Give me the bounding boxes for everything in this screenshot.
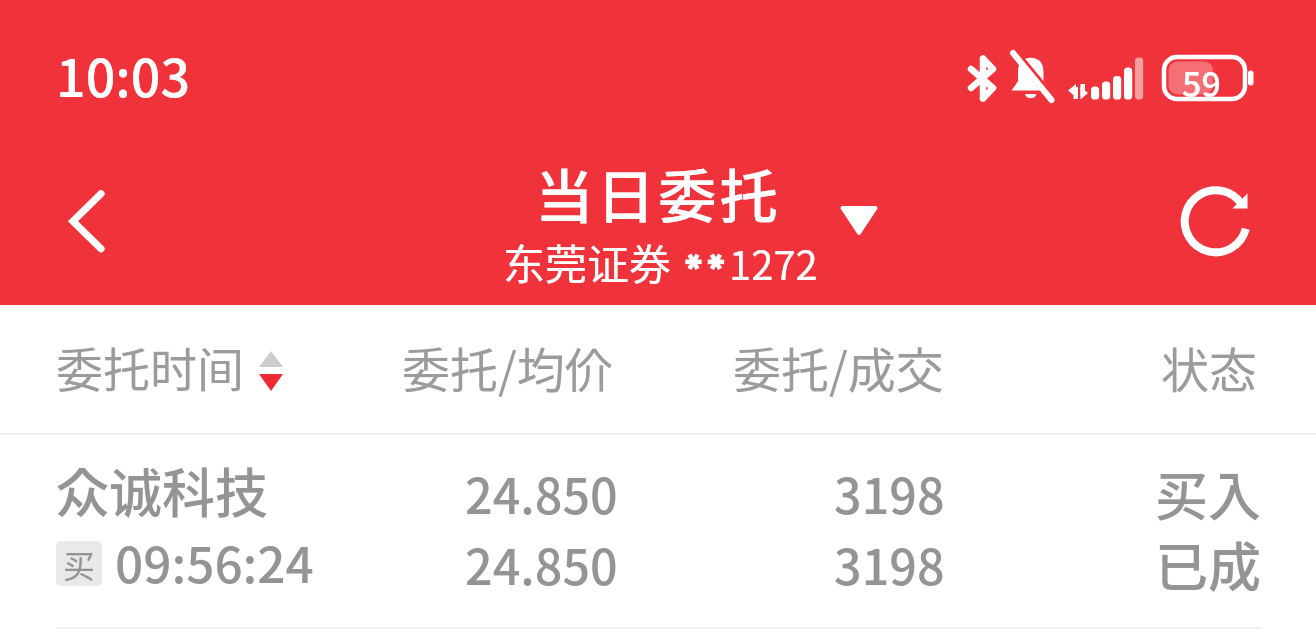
staticText: 东莞证券 xyxy=(503,231,672,292)
staticText: 买 xyxy=(63,541,96,586)
staticText: 59 xyxy=(1182,58,1221,107)
staticText: 买入 xyxy=(1155,455,1261,532)
button[interactable]: Refresh xyxy=(1167,172,1263,268)
staticText: 状态 xyxy=(1161,332,1258,402)
staticText: 24.850 xyxy=(465,458,618,528)
staticText: 委托/均价 xyxy=(402,332,613,402)
staticText: 委托时间 xyxy=(56,332,244,400)
staticText: 24.850 xyxy=(465,529,618,599)
staticText: 众诚科技 xyxy=(56,452,268,529)
staticText: 1272 xyxy=(729,234,818,292)
staticText: 3198 xyxy=(834,529,945,599)
staticText: 3198 xyxy=(834,458,945,528)
staticText: 委托/成交 xyxy=(733,332,944,402)
staticText: 09:56:24 xyxy=(115,526,314,598)
button[interactable]: 众诚科技 xyxy=(0,434,1316,626)
staticText: 当日委托 xyxy=(535,150,782,235)
button[interactable]: Back xyxy=(37,166,137,276)
staticText: 10:03 xyxy=(56,37,191,112)
staticText: 已成 xyxy=(1155,526,1261,603)
button[interactable]: Switch account xyxy=(831,191,887,251)
